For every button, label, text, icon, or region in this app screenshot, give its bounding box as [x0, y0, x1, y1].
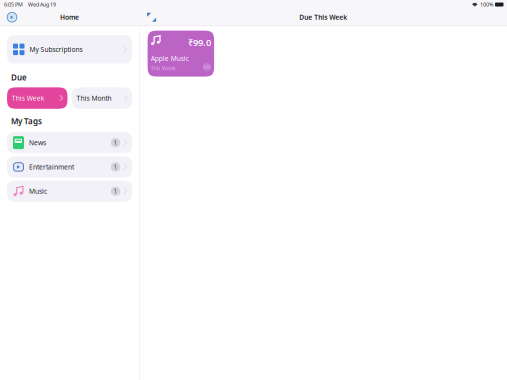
staticText: 1: [113, 187, 117, 196]
button[interactable]: Collapse sidebar: [144, 9, 160, 25]
staticText: Wed Aug 19: [28, 1, 56, 8]
button[interactable]: News: [7, 132, 132, 153]
staticText: 1: [113, 162, 117, 171]
button[interactable]: My Subscriptions: [7, 35, 132, 64]
staticText: My Tags: [11, 116, 42, 126]
button[interactable]: Entertainment: [7, 156, 132, 177]
staticText: This Week: [151, 64, 176, 72]
staticText: Music: [29, 187, 47, 196]
staticText: This Month: [76, 94, 111, 102]
staticText: AM: [203, 64, 210, 69]
button[interactable]: Music: [7, 181, 132, 202]
staticText: Due This Week: [299, 13, 347, 22]
staticText: 1: [113, 138, 117, 147]
staticText: ₹99.0: [188, 36, 211, 49]
staticText: Home: [60, 13, 79, 22]
button[interactable]: ₹99.0: [148, 31, 214, 77]
staticText: Apple Music: [151, 54, 189, 63]
staticText: 100%: [480, 1, 493, 8]
staticText: Due: [11, 72, 27, 83]
staticText: 6:05 PM: [4, 1, 23, 8]
button[interactable]: This Month: [72, 87, 132, 109]
button[interactable]: Play: [4, 9, 20, 25]
staticText: My Subscriptions: [29, 45, 82, 54]
button[interactable]: This Week: [7, 87, 67, 109]
staticText: This Week: [12, 94, 45, 102]
staticText: News: [29, 138, 46, 147]
staticText: Entertainment: [29, 162, 74, 171]
